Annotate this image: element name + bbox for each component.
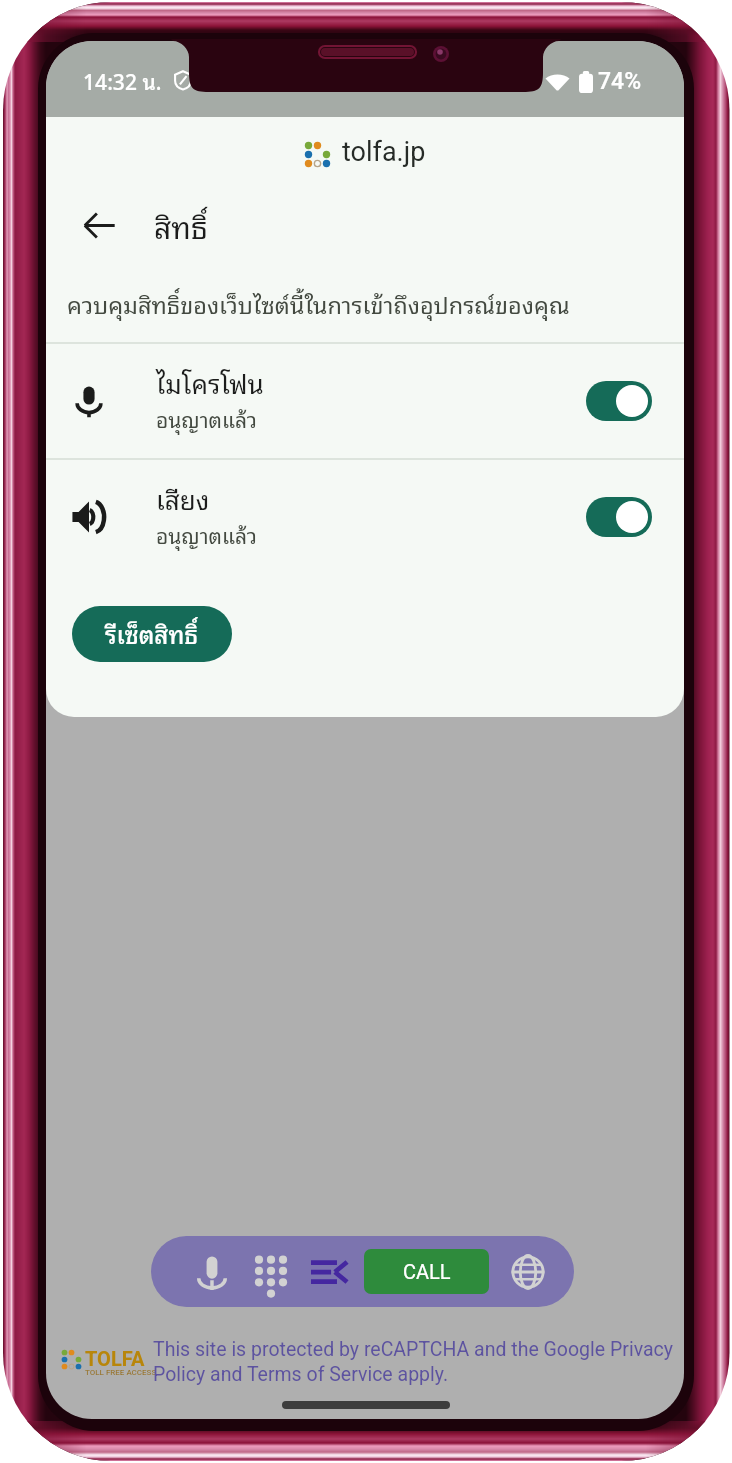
button[interactable]: รีเซ็ตสิทธิ์ (72, 606, 232, 662)
staticText: อนุญาตแล้ว (156, 402, 257, 436)
staticText: อนุญาตแล้ว (156, 518, 257, 552)
staticText: 74% (598, 68, 642, 95)
staticText: 14:32 น. (83, 64, 162, 98)
staticText: This site is protected by reCAPTCHA and … (153, 1338, 673, 1386)
button[interactable]: Toggle เสียง (586, 497, 652, 537)
button[interactable]: เสียง (46, 459, 684, 575)
button[interactable]: Back (46, 198, 684, 252)
staticText: เสียง (156, 477, 210, 519)
button[interactable]: ไมโครโฟน (46, 343, 684, 459)
button[interactable]: Transfer call (303, 1246, 355, 1298)
staticText: TOLFA (85, 1347, 145, 1370)
button[interactable]: CALL (364, 1249, 489, 1294)
staticText: ไมโครโฟน (156, 361, 264, 403)
staticText: CALL (403, 1260, 451, 1283)
button[interactable]: Toggle ไมโครโฟน (586, 381, 652, 421)
button[interactable]: Dialpad (245, 1246, 297, 1298)
staticText: รีเซ็ตสิทธิ์ (105, 614, 199, 652)
staticText: tolfa.jp (342, 136, 426, 168)
staticText: สิทธิ์ (154, 201, 208, 249)
staticText: ควบคุมสิทธิ์ของเว็บไซต์นี้ในการเข้าถึงอุ… (67, 285, 570, 323)
button[interactable]: Language (502, 1246, 554, 1298)
button[interactable]: Microphone (186, 1246, 238, 1298)
button[interactable]: Back (76, 202, 122, 248)
staticText: TOLL FREE ACCESS (85, 1368, 157, 1377)
